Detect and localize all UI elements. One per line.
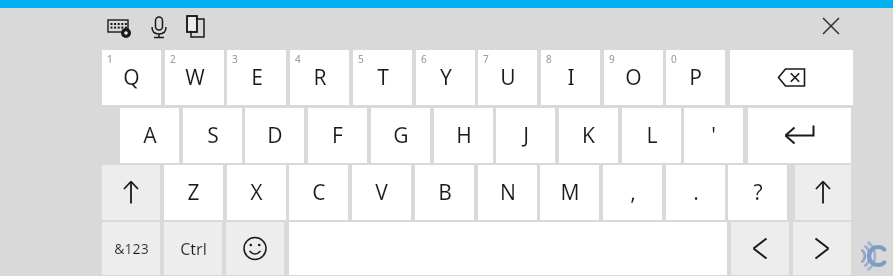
button[interactable]: N xyxy=(478,165,537,220)
button[interactable]: , xyxy=(603,165,662,220)
staticText: A xyxy=(143,121,157,150)
staticText: K xyxy=(582,121,595,150)
button[interactable]: Cortana xyxy=(856,240,888,270)
button[interactable]: K xyxy=(559,108,618,163)
button[interactable]: Right xyxy=(793,222,851,275)
button[interactable]: Emoji xyxy=(226,222,284,275)
staticText: R xyxy=(313,63,327,92)
button[interactable]: S xyxy=(183,108,242,163)
button[interactable]: 7 xyxy=(478,50,537,105)
staticText: 4 xyxy=(295,52,301,66)
staticText: F xyxy=(332,121,343,150)
button[interactable]: D xyxy=(245,108,304,163)
button[interactable]: M xyxy=(540,165,599,220)
button[interactable]: Dictate xyxy=(146,14,172,40)
button[interactable]: 4 xyxy=(290,50,349,105)
staticText: &123 xyxy=(114,239,149,258)
button[interactable]: Left xyxy=(731,222,789,275)
staticText: ' xyxy=(711,121,716,150)
staticText: ? xyxy=(753,178,763,207)
staticText: V xyxy=(375,178,388,207)
button[interactable]: ' xyxy=(684,108,743,163)
button[interactable]: Z xyxy=(164,165,223,220)
staticText: N xyxy=(500,178,516,207)
staticText: 0 xyxy=(671,52,677,66)
button[interactable]: G xyxy=(371,108,430,163)
staticText: 2 xyxy=(170,52,176,66)
staticText: . xyxy=(693,178,699,207)
staticText: Q xyxy=(123,63,140,92)
staticText: 8 xyxy=(546,52,552,66)
button[interactable]: B xyxy=(415,165,474,220)
button[interactable]: V xyxy=(352,165,411,220)
staticText: U xyxy=(500,63,516,92)
staticText: L xyxy=(646,121,658,150)
button[interactable]: A xyxy=(120,108,179,163)
staticText: O xyxy=(625,63,642,92)
button[interactable]: Keyboard settings xyxy=(104,14,136,40)
button[interactable]: 5 xyxy=(353,50,412,105)
staticText: S xyxy=(207,121,219,150)
button[interactable]: Enter xyxy=(748,108,851,163)
staticText: E xyxy=(251,63,263,92)
button[interactable]: Close xyxy=(813,10,849,42)
button[interactable]: 1 xyxy=(102,50,161,105)
staticText: T xyxy=(377,63,389,92)
button[interactable]: 0 xyxy=(666,50,725,105)
button[interactable]: Shift xyxy=(102,165,160,220)
button[interactable]: 8 xyxy=(541,50,600,105)
staticText: H xyxy=(456,121,472,150)
button[interactable]: Ctrl xyxy=(164,222,222,275)
button[interactable]: L xyxy=(622,108,681,163)
button[interactable]: 3 xyxy=(227,50,286,105)
button[interactable]: 2 xyxy=(165,50,224,105)
staticText: 5 xyxy=(358,52,364,66)
button[interactable]: C xyxy=(289,165,348,220)
staticText: W xyxy=(185,63,205,92)
staticText: X xyxy=(250,178,263,207)
button[interactable]: F xyxy=(308,108,367,163)
staticText: Ctrl xyxy=(180,238,207,260)
staticText: J xyxy=(523,121,529,150)
button[interactable]: . xyxy=(666,165,725,220)
button[interactable]: X xyxy=(227,165,286,220)
button[interactable]: 6 xyxy=(416,50,475,105)
staticText: Y xyxy=(440,63,452,92)
button[interactable]: Shift xyxy=(795,165,851,220)
staticText: G xyxy=(393,121,409,150)
staticText: 7 xyxy=(483,52,489,66)
button[interactable]: Backspace xyxy=(730,50,853,105)
staticText: D xyxy=(267,121,283,150)
staticText: 9 xyxy=(609,52,615,66)
button[interactable]: 9 xyxy=(604,50,663,105)
staticText: 3 xyxy=(232,52,238,66)
staticText: I xyxy=(567,63,575,92)
button[interactable]: ? xyxy=(728,165,787,220)
button[interactable]: H xyxy=(434,108,493,163)
staticText: B xyxy=(438,178,452,207)
button[interactable]: &123 xyxy=(102,222,160,275)
staticText: M xyxy=(560,178,580,207)
staticText: , xyxy=(630,178,636,207)
staticText: C xyxy=(312,178,326,207)
button[interactable]: J xyxy=(496,108,555,163)
staticText: P xyxy=(689,63,702,92)
button[interactable]: Clipboard xyxy=(184,14,210,40)
staticText: Z xyxy=(187,178,200,207)
staticText: 6 xyxy=(421,52,427,66)
staticText: 1 xyxy=(107,52,113,66)
